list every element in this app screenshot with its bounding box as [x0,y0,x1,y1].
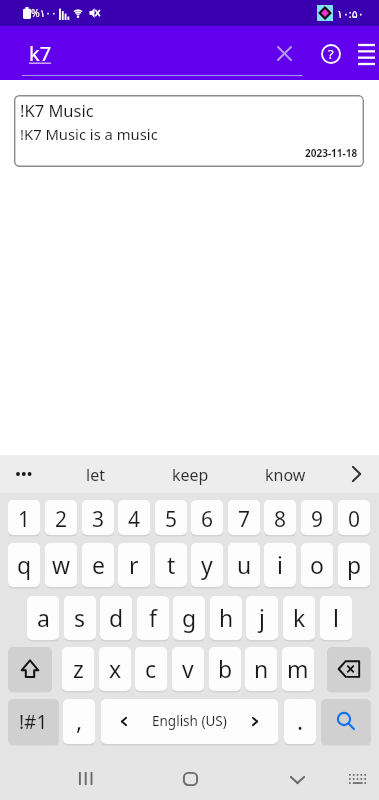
button[interactable]: c [135,647,167,691]
staticText: 2023-11-18 [305,146,358,160]
staticText: ? [328,45,334,63]
staticText: v [182,653,194,684]
button[interactable]: 5 [155,500,187,535]
button[interactable]: 2 [45,500,77,535]
button[interactable]: Shift [8,647,52,691]
button[interactable]: r [118,543,150,587]
button[interactable]: d [100,596,132,640]
button[interactable]: a [27,596,59,640]
staticText: , [76,705,83,736]
staticText: q [17,549,32,580]
button[interactable]: j [246,596,278,640]
button[interactable]: Home [153,760,228,800]
button[interactable]: English (US) [101,699,278,744]
staticText: g [182,602,197,633]
staticText: k7 [29,40,52,67]
staticText: e [92,549,105,580]
staticText: t [167,549,176,580]
button[interactable]: p [338,543,370,587]
button[interactable]: u [228,543,260,587]
button[interactable]: . [284,699,316,744]
button[interactable]: Hide keyboard [262,760,332,800]
button[interactable]: know [238,455,333,493]
staticText: z [73,653,84,684]
staticText: !K7 Music is a music [20,124,158,144]
button[interactable]: Search [321,699,371,744]
staticText: k [293,602,306,633]
button[interactable]: 3 [82,500,114,535]
button[interactable]: Menu [351,26,379,80]
staticText: know [265,464,306,486]
staticText: 7 [238,505,251,534]
button[interactable]: x [99,647,131,691]
button[interactable]: !K7 Music [14,95,364,167]
staticText: English (US) [152,712,227,730]
button[interactable]: t [155,543,187,587]
staticText: r [129,549,139,580]
staticText: %١٠٠ [31,6,57,20]
staticText: m [287,653,309,684]
staticText: 9 [311,505,324,534]
button[interactable]: 6 [191,500,223,535]
button[interactable]: n [245,647,277,691]
staticText: . [297,705,304,736]
staticText: l [333,602,339,633]
button[interactable]: More suggestions [0,455,47,493]
button[interactable]: b [209,647,241,691]
button[interactable]: l [320,596,352,640]
staticText: x [109,653,122,684]
staticText: ۱۰:۵۰ [337,6,364,21]
button[interactable]: 0 [338,500,370,535]
button[interactable]: o [301,543,333,587]
button[interactable]: e [82,543,114,587]
button[interactable]: 9 [301,500,333,535]
staticText: c [145,653,157,684]
staticText: s [74,602,86,633]
button[interactable]: let [48,455,143,493]
button[interactable]: v [172,647,204,691]
button[interactable]: 4 [118,500,150,535]
staticText: 2 [55,505,68,534]
staticText: p [347,549,362,580]
button[interactable]: g [173,596,205,640]
button[interactable]: , [63,699,95,744]
staticText: b [218,653,233,684]
button[interactable]: 7 [228,500,260,535]
staticText: 3 [92,505,105,534]
button[interactable]: w [45,543,77,587]
button[interactable]: keep [143,455,238,493]
staticText: h [219,602,234,633]
button[interactable]: y [191,543,223,587]
staticText: !#1 [19,709,48,735]
staticText: 5 [165,505,178,534]
button[interactable]: !#1 [8,699,59,744]
staticText: n [254,653,269,684]
staticText: 0 [348,505,361,534]
staticText: w [52,549,71,580]
button[interactable]: s [64,596,96,640]
staticText: i [277,549,283,580]
staticText: keep [172,464,209,486]
button[interactable]: m [282,647,314,691]
button[interactable]: Clear search [264,26,304,80]
button[interactable]: Help [311,26,351,80]
button[interactable]: q [8,543,40,587]
button[interactable]: f [137,596,169,640]
staticText: y [201,549,213,580]
button[interactable]: 8 [264,500,296,535]
staticText: 1 [18,505,31,534]
button[interactable]: Recent apps [48,760,122,800]
staticText: j [259,602,265,633]
button[interactable]: Change keyboard [338,760,377,800]
button[interactable]: Expand suggestions [334,455,379,493]
staticText: let [86,464,105,486]
button[interactable]: z [62,647,94,691]
button[interactable]: h [210,596,242,640]
button[interactable]: Backspace [327,647,371,691]
button[interactable]: 1 [8,500,40,535]
button[interactable]: i [264,543,296,587]
staticText: u [237,549,252,580]
button[interactable]: k [283,596,315,640]
staticText: a [37,602,50,633]
staticText: o [310,549,324,580]
